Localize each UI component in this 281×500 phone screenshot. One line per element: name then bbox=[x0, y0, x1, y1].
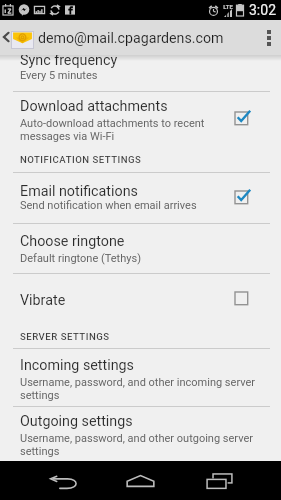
staticText: LTE bbox=[223, 3, 233, 10]
button[interactable]: Recent apps bbox=[187, 461, 252, 500]
button[interactable] bbox=[0, 273, 281, 315]
staticText: Choose ringtone bbox=[20, 233, 125, 250]
staticText: Download attachments bbox=[20, 98, 168, 115]
button[interactable]: Back bbox=[31, 461, 97, 500]
button[interactable]: Navigate up bbox=[0, 20, 34, 55]
button[interactable] bbox=[0, 224, 281, 272]
staticText: Incoming settings bbox=[20, 357, 134, 374]
staticText: Every 5 minutes bbox=[20, 69, 98, 82]
staticText: Default ringtone (Tethys) bbox=[20, 252, 141, 265]
button[interactable] bbox=[0, 409, 281, 460]
button[interactable] bbox=[0, 91, 281, 148]
staticText: Send notification when email arrives bbox=[20, 199, 197, 212]
button[interactable]: More options bbox=[257, 20, 281, 55]
staticText: Vibrate bbox=[20, 292, 66, 309]
button[interactable] bbox=[0, 349, 281, 407]
button[interactable]: Home bbox=[108, 461, 173, 500]
button[interactable] bbox=[0, 53, 281, 90]
staticText: Email notifications bbox=[20, 183, 138, 200]
staticText: Sync frequency bbox=[20, 52, 118, 69]
staticText: demo@mail.cpagardens.com bbox=[38, 30, 224, 47]
button[interactable] bbox=[0, 173, 281, 223]
staticText: 3:02 bbox=[249, 2, 276, 18]
staticText: Outgoing settings bbox=[20, 413, 133, 430]
staticText: Username, password, and other outgoing s… bbox=[20, 432, 253, 457]
staticText: SERVER SETTINGS bbox=[20, 331, 110, 342]
staticText: NOTIFICATION SETTINGS bbox=[20, 154, 142, 165]
staticText: Auto-download attachments to recent mess… bbox=[20, 117, 205, 142]
staticText: Username, password, and other incoming s… bbox=[20, 376, 256, 401]
